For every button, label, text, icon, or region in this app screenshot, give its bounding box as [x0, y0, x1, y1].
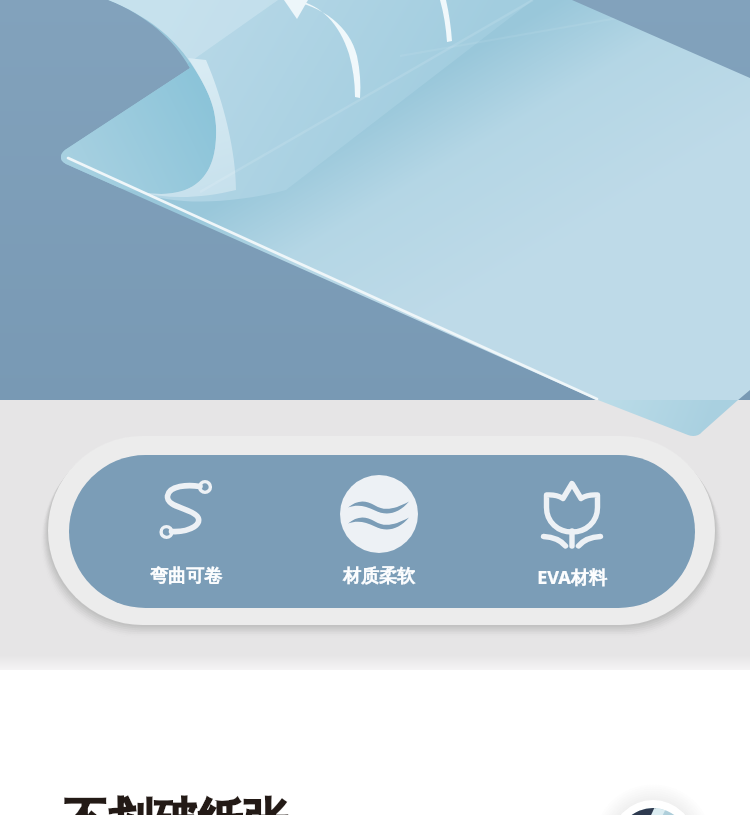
button[interactable]: 弯曲可卷: [89, 455, 282, 608]
button[interactable]: 材质柔软: [282, 455, 475, 608]
staticText: 弯曲可卷: [150, 565, 222, 588]
button[interactable]: 不划破纸张: [63, 792, 288, 815]
staticText: EVA材料: [537, 565, 607, 590]
staticText: 材质柔软: [343, 565, 415, 588]
button[interactable]: EVA材料: [475, 455, 668, 608]
